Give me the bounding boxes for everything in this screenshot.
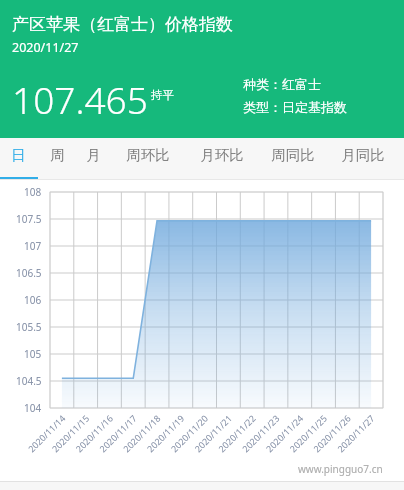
staticText: 持平	[151, 88, 174, 102]
button[interactable]: 月同比	[337, 142, 389, 168]
staticText: 周环比	[126, 146, 170, 164]
button[interactable]: 月	[80, 142, 106, 168]
staticText: 月同比	[341, 146, 385, 164]
button[interactable]: 日	[5, 142, 31, 168]
staticText: 类型：日定基指数	[243, 99, 347, 115]
button[interactable]: 周环比	[122, 142, 174, 168]
staticText: 周	[50, 146, 65, 164]
button[interactable]: 月环比	[196, 142, 248, 168]
staticText: 107.465	[12, 74, 148, 124]
staticText: 2020/11/27	[12, 39, 79, 56]
staticText: 周同比	[271, 146, 315, 164]
staticText: 种类：红富士	[243, 76, 321, 92]
staticText: 产区苹果（红富士）价格指数	[12, 14, 233, 35]
button[interactable]: 周同比	[267, 142, 319, 168]
staticText: 月	[86, 146, 101, 164]
staticText: 日	[11, 146, 26, 164]
button[interactable]: 周	[44, 142, 70, 168]
staticText: 月环比	[200, 146, 244, 164]
